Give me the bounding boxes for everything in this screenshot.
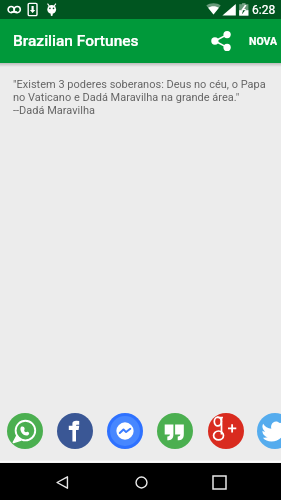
button[interactable]: NOVA [240,21,281,61]
staticText: "Existem 3 poderes soberanos: Deus no cé… [13,78,269,117]
button[interactable]: Back [45,465,79,499]
button[interactable]: Home [124,465,158,499]
button[interactable]: WhatsApp [7,413,43,449]
button[interactable]: Google Plus [208,413,244,449]
button[interactable]: Share [202,22,240,60]
staticText: 6:28 [252,3,276,17]
button[interactable]: Messenger [107,413,143,449]
button[interactable]: Recent apps [202,465,236,499]
button[interactable]: Twitter [257,413,281,449]
staticText: NOVA [249,35,278,47]
staticText: Brazilian Fortunes [13,32,139,50]
button[interactable]: Facebook [57,413,93,449]
button[interactable]: Hangouts [157,413,193,449]
